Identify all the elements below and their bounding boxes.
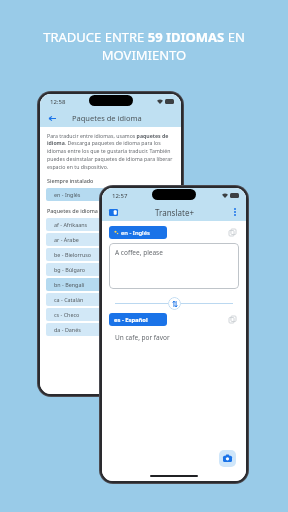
button[interactable]: be - Bielorruso (46, 248, 175, 261)
staticText: Un cafe, por favor (115, 333, 170, 342)
button[interactable]: Back (46, 112, 58, 124)
staticText: ar - Árabe (54, 236, 79, 243)
staticText: bg - Búlgaro (54, 266, 86, 273)
button[interactable]: ca - Catalán (46, 293, 175, 306)
button[interactable]: Copy text (226, 226, 239, 239)
staticText: Paquetes de idioma (72, 113, 142, 123)
button[interactable]: ar - Árabe (46, 233, 175, 246)
button[interactable]: Language packs (107, 206, 119, 218)
staticText: 12:58 (50, 98, 66, 106)
staticText: en - Inglés (54, 191, 81, 198)
staticText: Siempre instalado (47, 177, 94, 184)
staticText: TRADUCE ENTRE 59 IDIOMAS EN MOVIMIENTO (18, 28, 270, 64)
staticText: cs - Checo (54, 311, 80, 318)
button[interactable]: bn - Bengalí (46, 278, 175, 291)
staticText: en - Inglés (121, 229, 150, 237)
staticText: bn - Bengalí (54, 281, 85, 288)
button[interactable]: More options (229, 206, 241, 218)
button[interactable]: Copy text (226, 313, 239, 326)
staticText: A coffee, please (115, 248, 163, 257)
staticText: be - Bielorruso (54, 251, 92, 258)
button[interactable]: A coffee, please (109, 243, 239, 289)
staticText: Translate+ (155, 207, 194, 218)
button[interactable]: en - Inglés (46, 188, 175, 201)
button[interactable]: en - Inglés (109, 226, 167, 239)
button[interactable]: cs - Checo (46, 308, 175, 321)
staticText: af - Afrikaans (54, 221, 88, 228)
staticText: Paquetes de idioma disponibles (47, 207, 129, 214)
staticText: da - Danés (54, 326, 81, 333)
button[interactable]: af - Afrikaans (46, 218, 175, 231)
button[interactable]: es - Español (109, 313, 167, 326)
staticText: ca - Catalán (54, 296, 84, 303)
staticText: 12:57 (112, 192, 128, 200)
staticText: Para traducir entre idiomas, usamos paqu… (47, 132, 174, 170)
button[interactable]: Swap languages (168, 297, 181, 310)
button[interactable]: da - Danés (46, 323, 175, 336)
staticText: es - Español (114, 316, 148, 324)
button[interactable]: Camera translate (219, 450, 236, 467)
button[interactable]: bg - Búlgaro (46, 263, 175, 276)
